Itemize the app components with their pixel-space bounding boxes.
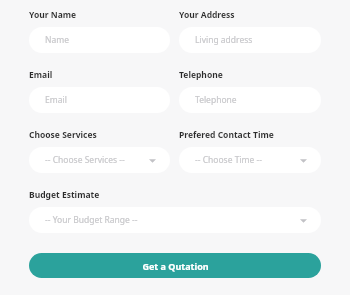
button[interactable]: Name — [29, 27, 170, 53]
button[interactable]: Telephone — [179, 87, 321, 113]
button[interactable]: Living address — [179, 27, 321, 53]
staticText: Choose Services — [29, 129, 97, 141]
staticText: Email — [29, 69, 53, 81]
button[interactable]: -- Choose Time -- — [179, 147, 321, 173]
staticText: Telephone — [179, 69, 223, 81]
staticText: -- Choose Time -- — [195, 154, 300, 166]
staticText: Email — [45, 94, 156, 106]
staticText: Get a Qutation — [142, 260, 209, 272]
button[interactable]: -- Your Budget Range -- — [29, 207, 321, 233]
button[interactable]: Email — [29, 87, 170, 113]
staticText: Your Name — [29, 9, 77, 21]
staticText: -- Choose Services -- — [45, 154, 149, 166]
button[interactable]: Get a Qutation — [29, 253, 321, 278]
staticText: Prefered Contact Time — [179, 129, 274, 141]
staticText: -- Your Budget Range -- — [45, 214, 300, 226]
button[interactable]: -- Choose Services -- — [29, 147, 170, 173]
staticText: Telephone — [195, 94, 307, 106]
staticText: Name — [45, 34, 156, 46]
staticText: Your Address — [179, 9, 235, 21]
staticText: Budget Estimate — [29, 189, 100, 201]
staticText: Living address — [195, 34, 307, 46]
